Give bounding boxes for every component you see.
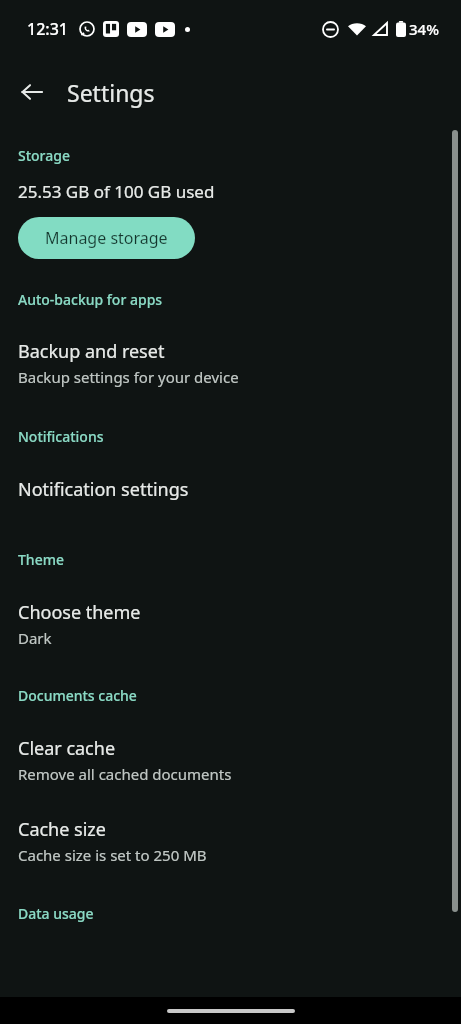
button[interactable]: Clear cache (0, 736, 461, 784)
staticText: Clear cache (18, 736, 116, 761)
staticText: 25.53 GB of 100 GB used (18, 180, 215, 203)
staticText: Notification settings (18, 477, 189, 502)
staticText: Theme (18, 550, 64, 569)
staticText: Documents cache (18, 686, 137, 705)
staticText: Data usage (18, 904, 94, 923)
button[interactable]: Choose theme (0, 600, 461, 648)
button[interactable]: Manage storage (18, 217, 195, 259)
staticText: Choose theme (18, 600, 141, 625)
staticText: Manage storage (45, 227, 168, 249)
staticText: Backup settings for your device (18, 367, 239, 387)
staticText: Dark (18, 628, 52, 648)
staticText: Cache size is set to 250 MB (18, 845, 207, 865)
staticText: 12:31 (27, 18, 68, 40)
button[interactable]: Back (10, 70, 54, 114)
staticText: Remove all cached documents (18, 764, 232, 784)
button[interactable]: Backup and reset (0, 339, 461, 387)
button[interactable]: Notification settings (0, 477, 461, 502)
staticText: Cache size (18, 817, 106, 842)
staticText: Auto-backup for apps (18, 290, 163, 309)
staticText: Backup and reset (18, 339, 165, 364)
staticText: 34% (409, 19, 439, 39)
button[interactable]: Cache size (0, 817, 461, 865)
staticText: Settings (67, 77, 155, 108)
staticText: Notifications (18, 427, 104, 446)
staticText: Storage (18, 146, 70, 165)
